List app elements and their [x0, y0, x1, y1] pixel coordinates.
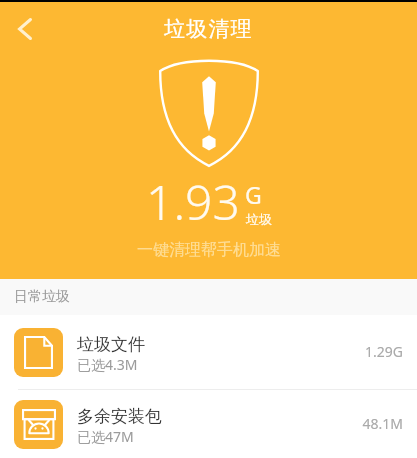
staticText: 日常垃圾 — [14, 288, 70, 306]
staticText: 垃圾文件 — [77, 334, 145, 355]
button[interactable]: Back — [8, 12, 42, 46]
staticText: 1.93 — [146, 169, 240, 234]
staticText: 48.1M — [362, 414, 403, 433]
staticText: 已选47M — [77, 427, 134, 446]
button[interactable]: 垃圾文件 — [0, 315, 417, 389]
staticText: 垃圾 — [246, 211, 272, 227]
button[interactable]: 一键清理帮手机加速 — [133, 238, 285, 262]
staticText: 多余安装包 — [77, 406, 162, 427]
staticText: 垃圾清理 — [164, 16, 253, 42]
staticText: G — [245, 179, 262, 210]
staticText: 已选4.3M — [77, 355, 138, 374]
button[interactable]: 多余安装包 — [0, 390, 417, 458]
staticText: 一键清理帮手机加速 — [137, 240, 281, 260]
staticText: 1.29G — [365, 342, 403, 361]
